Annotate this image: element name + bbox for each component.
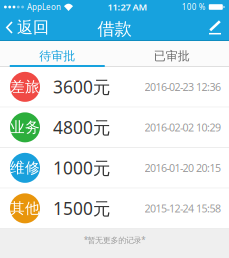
staticText: AppLeon xyxy=(27,2,61,12)
button[interactable]: 业务 xyxy=(0,107,229,147)
staticText: 100 % xyxy=(182,2,206,12)
button[interactable]: 已审批 xyxy=(114,41,229,67)
staticText: 11:27 AM xyxy=(107,1,147,13)
button[interactable]: 其他 xyxy=(0,188,229,228)
staticText: 差旅 xyxy=(10,78,40,96)
staticText: 业务 xyxy=(10,118,40,136)
button[interactable]: 待审批 xyxy=(0,41,114,67)
staticText: 维修 xyxy=(10,159,40,177)
button[interactable]: 维修 xyxy=(0,148,229,188)
staticText: 待审批 xyxy=(39,49,75,63)
staticText: 借款 xyxy=(97,18,131,40)
staticText: *暂无更多的记录* xyxy=(84,235,145,245)
staticText: 2016-01-20 20:15 xyxy=(144,161,221,175)
button[interactable]: Edit xyxy=(209,14,229,40)
button[interactable]: 返回 xyxy=(0,12,49,43)
staticText: 2016-02-02 10:29 xyxy=(144,120,221,134)
staticText: 返回 xyxy=(17,18,49,37)
staticText: 已审批 xyxy=(154,49,190,63)
staticText: 2016-02-23 12:36 xyxy=(144,80,221,94)
staticText: 4800元 xyxy=(53,116,110,139)
staticText: 1500元 xyxy=(53,197,110,220)
staticText: 3600元 xyxy=(53,75,110,98)
staticText: 其他 xyxy=(10,199,40,217)
staticText: 1000元 xyxy=(53,156,110,179)
staticText: 2015-12-24 15:58 xyxy=(144,201,221,215)
button[interactable]: 差旅 xyxy=(0,67,229,107)
